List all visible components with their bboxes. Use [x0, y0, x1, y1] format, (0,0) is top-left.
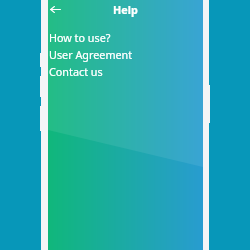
- button[interactable]: Back: [47, 1, 63, 17]
- staticText: User Agreement: [49, 47, 133, 62]
- staticText: Help: [113, 2, 138, 17]
- staticText: Contact us: [49, 64, 103, 79]
- staticText: How to use?: [49, 30, 111, 45]
- button[interactable]: User Agreement: [47, 46, 202, 63]
- button[interactable]: How to use?: [47, 29, 202, 46]
- button[interactable]: Contact us: [47, 63, 202, 80]
